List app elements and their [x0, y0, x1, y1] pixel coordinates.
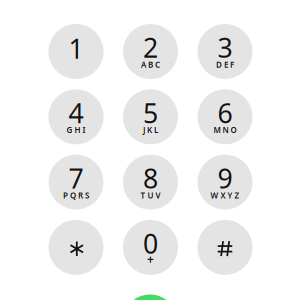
button[interactable]: 8: [123, 155, 178, 210]
staticText: 2: [143, 30, 158, 65]
staticText: +: [147, 251, 154, 267]
button[interactable]: 1: [48, 24, 103, 79]
staticText: 8: [143, 160, 158, 196]
button[interactable]: 2: [123, 24, 178, 79]
button[interactable]: 9: [197, 155, 252, 210]
button[interactable]: Call: [122, 294, 177, 300]
button[interactable]: Pound: [197, 220, 252, 275]
staticText: M N O: [213, 125, 236, 135]
staticText: A B C: [141, 59, 160, 70]
staticText: D E F: [216, 59, 234, 70]
staticText: 9: [217, 160, 232, 196]
button[interactable]: Star: [48, 220, 103, 275]
button[interactable]: 4: [48, 89, 103, 144]
staticText: 7: [68, 160, 83, 196]
button[interactable]: 0: [123, 220, 178, 275]
staticText: T U V: [140, 190, 160, 201]
button[interactable]: 6: [197, 89, 252, 144]
staticText: 5: [143, 95, 158, 130]
button[interactable]: 5: [123, 89, 178, 144]
staticText: 3: [217, 30, 232, 65]
staticText: 4: [68, 95, 83, 130]
staticText: G H I: [66, 125, 85, 135]
staticText: 0: [143, 226, 158, 261]
staticText: 6: [217, 95, 232, 130]
staticText: P Q R S: [63, 190, 89, 201]
button[interactable]: 7: [48, 155, 103, 210]
staticText: J K L: [143, 125, 158, 135]
staticText: 1: [68, 31, 83, 66]
button[interactable]: 3: [197, 24, 252, 79]
staticText: W X Y Z: [210, 190, 239, 201]
